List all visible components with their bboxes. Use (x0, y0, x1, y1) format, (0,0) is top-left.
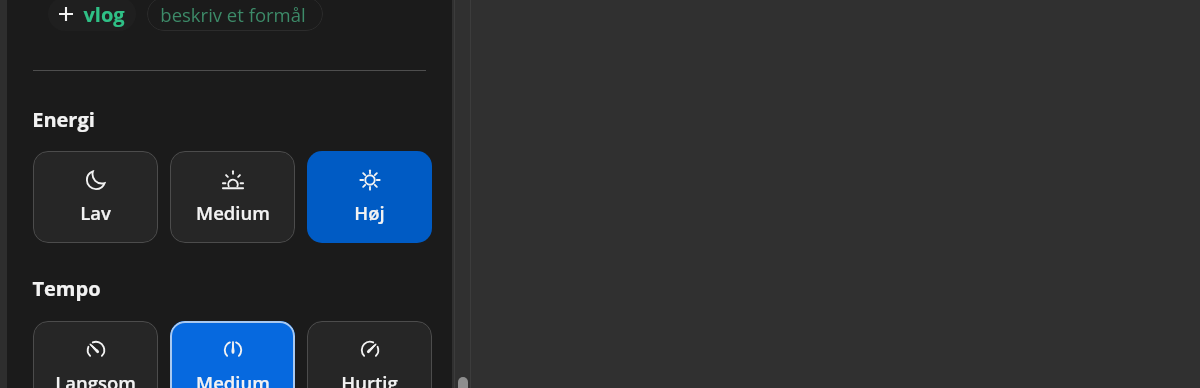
button[interactable]: vlog (48, 0, 136, 31)
staticText: Medium (196, 370, 270, 388)
button[interactable]: Langsom (33, 321, 158, 388)
button[interactable]: Medium (170, 151, 295, 243)
button[interactable]: Høj (307, 151, 432, 243)
staticText: vlog (83, 1, 125, 28)
staticText: Lav (80, 200, 111, 225)
button[interactable]: beskriv et formål (147, 0, 323, 31)
staticText: Høj (354, 200, 385, 225)
button[interactable]: Medium (170, 321, 295, 388)
staticText: Tempo (32, 275, 101, 302)
button[interactable]: Hurtig (307, 321, 432, 388)
other: Scrollbar (458, 377, 468, 388)
staticText: beskriv et formål (160, 2, 306, 27)
staticText: Energi (32, 106, 95, 133)
staticText: Hurtig (341, 370, 398, 388)
staticText: Medium (196, 200, 270, 225)
button[interactable]: Lav (33, 151, 158, 243)
staticText: Langsom (55, 370, 136, 388)
